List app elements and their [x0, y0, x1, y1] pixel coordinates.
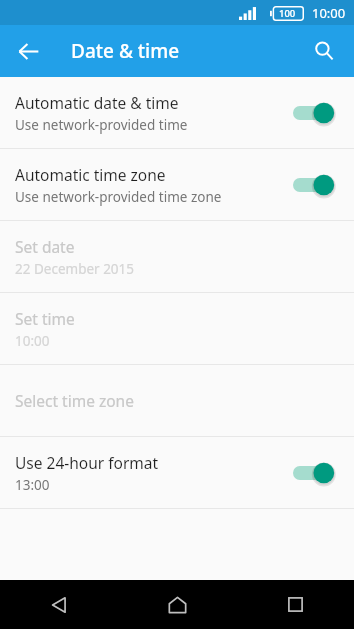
button[interactable]: Toggle [293, 170, 339, 200]
button[interactable]: Use 24-hour format [0, 437, 354, 508]
button[interactable]: Back [0, 580, 118, 629]
staticText: 13:00 [15, 476, 50, 494]
staticText: Use network-provided time zone [15, 188, 222, 206]
button[interactable]: Search [301, 28, 347, 74]
staticText: Date & time [71, 38, 180, 64]
button[interactable]: Home [118, 580, 236, 629]
staticText: Use network-provided time [15, 116, 188, 134]
staticText: Set time [15, 308, 75, 329]
staticText: 100 [279, 7, 296, 20]
staticText: Select time zone [15, 390, 134, 411]
staticText: Set date [15, 236, 75, 257]
button[interactable]: Toggle [293, 458, 339, 488]
button[interactable]: Automatic time zone [0, 149, 354, 220]
button[interactable]: Back [5, 28, 51, 74]
button[interactable]: Toggle [293, 98, 339, 128]
staticText: 22 December 2015 [15, 260, 135, 278]
staticText: 10:00 [15, 332, 50, 350]
staticText: Automatic date & time [15, 92, 179, 113]
button[interactable]: Set date [0, 221, 354, 292]
staticText: Use 24-hour format [15, 452, 159, 473]
button[interactable]: Set time [0, 293, 354, 364]
staticText: 10:00 [312, 4, 346, 22]
button[interactable]: Select time zone [0, 365, 354, 436]
staticText: Automatic time zone [15, 164, 166, 185]
button[interactable]: Automatic date & time [0, 77, 354, 148]
button[interactable]: Recent apps [236, 580, 354, 629]
